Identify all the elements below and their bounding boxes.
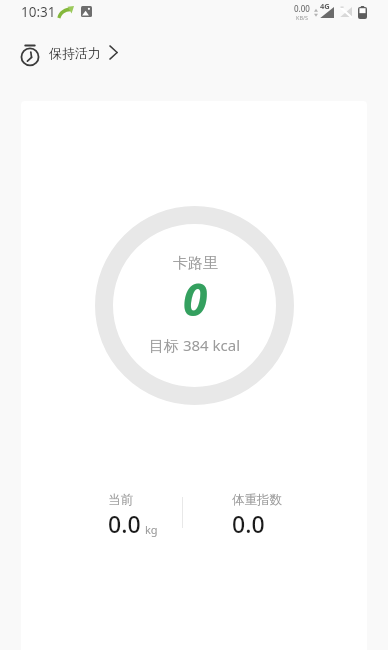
staticText: 0.0 (232, 508, 265, 539)
button[interactable]: 当前 (108, 492, 158, 539)
staticText: 卡路里 (173, 254, 218, 273)
staticText: KB/S (296, 14, 309, 21)
button[interactable]: 保持活力 (0, 32, 388, 73)
staticText: 4G (320, 1, 330, 11)
staticText: 0.0 (108, 508, 141, 539)
staticText: 10:31 (21, 3, 56, 21)
staticText: 当前 (108, 492, 133, 508)
button[interactable]: 体重指数 (232, 492, 282, 539)
staticText: 保持活力 (49, 45, 101, 61)
staticText: 0 (183, 269, 208, 329)
staticText: 目标 384 kcal (149, 335, 241, 355)
staticText: kg (145, 522, 158, 537)
staticText: 体重指数 (232, 492, 282, 508)
button[interactable]: Calories ring (95, 206, 294, 405)
other: More (109, 45, 118, 60)
staticText: 0.00 (294, 3, 310, 14)
